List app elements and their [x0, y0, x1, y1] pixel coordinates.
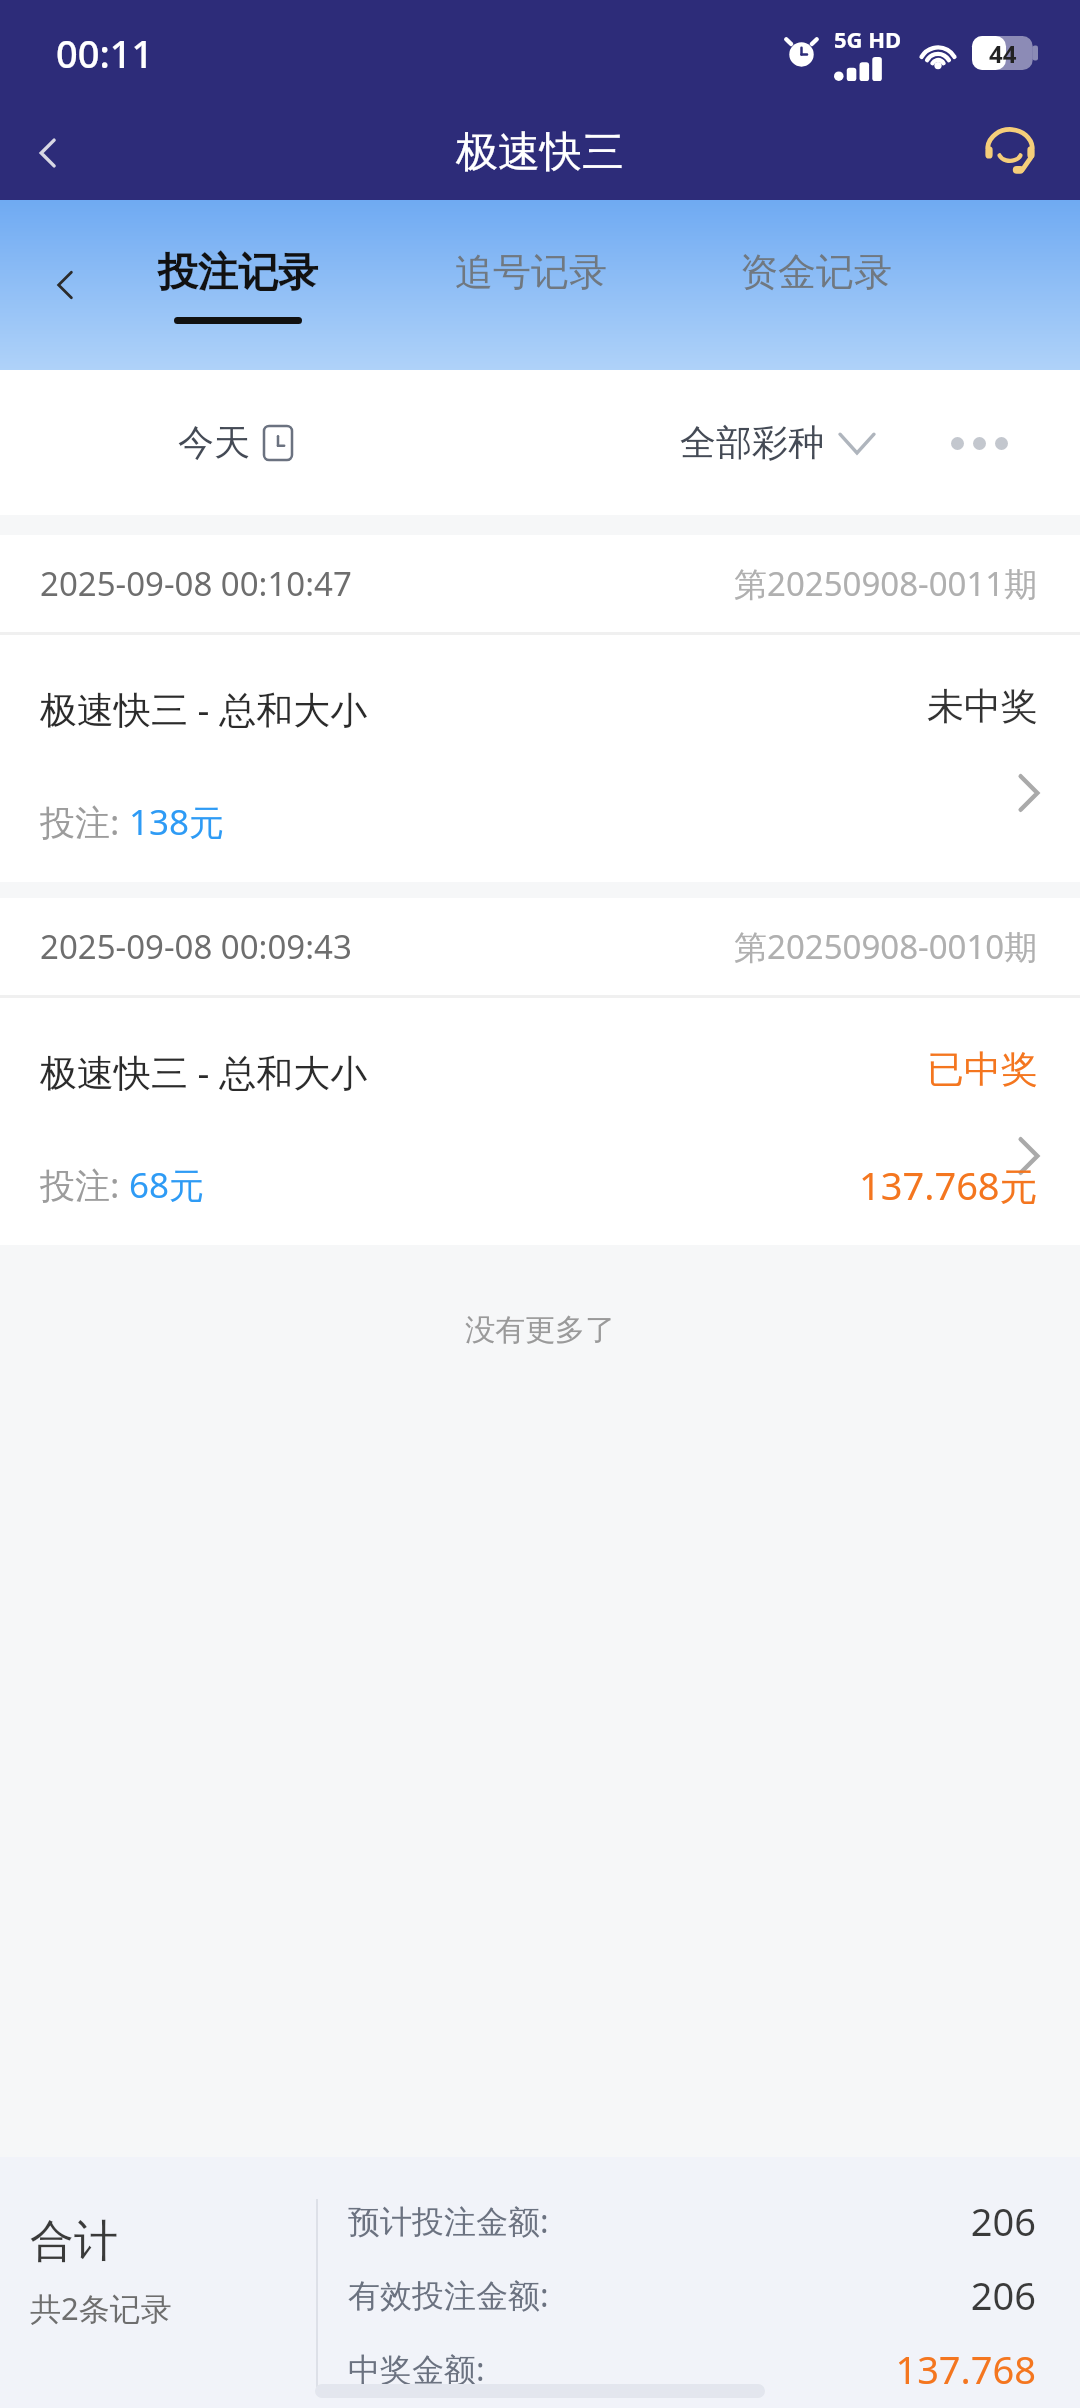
- staticText: 投注:: [40, 1161, 129, 1209]
- button[interactable]: 资金记录: [740, 248, 892, 296]
- staticText: 第20250908-0010期: [734, 924, 1038, 969]
- button[interactable]: 2025-09-08 00:09:43: [0, 898, 1080, 1245]
- button[interactable]: Customer service: [970, 113, 1050, 193]
- staticText: 极速快三 - 总和大小: [40, 683, 368, 734]
- staticText: 中奖金额:: [348, 2347, 485, 2391]
- staticText: 有效投注金额:: [348, 2273, 549, 2317]
- staticText: 206: [970, 2195, 1036, 2247]
- staticText: 今天: [178, 420, 250, 465]
- staticText: 资金记录: [740, 248, 892, 296]
- button[interactable]: 2025-09-08 00:10:47: [0, 535, 1080, 882]
- button[interactable]: More options: [934, 403, 1024, 483]
- staticText: 合计: [30, 2214, 118, 2269]
- staticText: 预计投注金额:: [348, 2199, 549, 2243]
- staticText: 206: [970, 2269, 1036, 2321]
- staticText: 投注:: [40, 798, 129, 846]
- staticText: 投注记录: [158, 247, 318, 297]
- staticText: 未中奖: [927, 683, 1038, 730]
- staticText: 138元: [129, 798, 225, 846]
- staticText: 极速快三 - 总和大小: [40, 1046, 368, 1097]
- staticText: 00:11: [56, 27, 154, 79]
- staticText: 68元: [129, 1161, 205, 1209]
- staticText: 5G HD: [834, 24, 902, 54]
- staticText: 2025-09-08 00:10:47: [40, 561, 352, 606]
- staticText: 2025-09-08 00:09:43: [40, 924, 352, 969]
- staticText: 全部彩种: [680, 420, 824, 465]
- staticText: 没有更多了: [465, 1311, 615, 1349]
- staticText: 44: [989, 37, 1017, 70]
- staticText: 已中奖: [927, 1046, 1038, 1093]
- staticText: 第20250908-0011期: [734, 561, 1038, 606]
- button[interactable]: Back: [22, 242, 108, 328]
- button[interactable]: Back: [0, 105, 96, 200]
- staticText: 137.768元: [859, 1159, 1038, 1211]
- staticText: 共2条记录: [30, 2287, 172, 2329]
- button[interactable]: 全部彩种: [680, 420, 874, 465]
- button[interactable]: 投注记录: [158, 247, 318, 324]
- staticText: 追号记录: [455, 248, 607, 296]
- button[interactable]: 今天: [178, 420, 292, 465]
- staticText: 极速快三: [456, 126, 624, 179]
- button[interactable]: 追号记录: [455, 248, 607, 296]
- staticText: 137.768: [895, 2343, 1036, 2395]
